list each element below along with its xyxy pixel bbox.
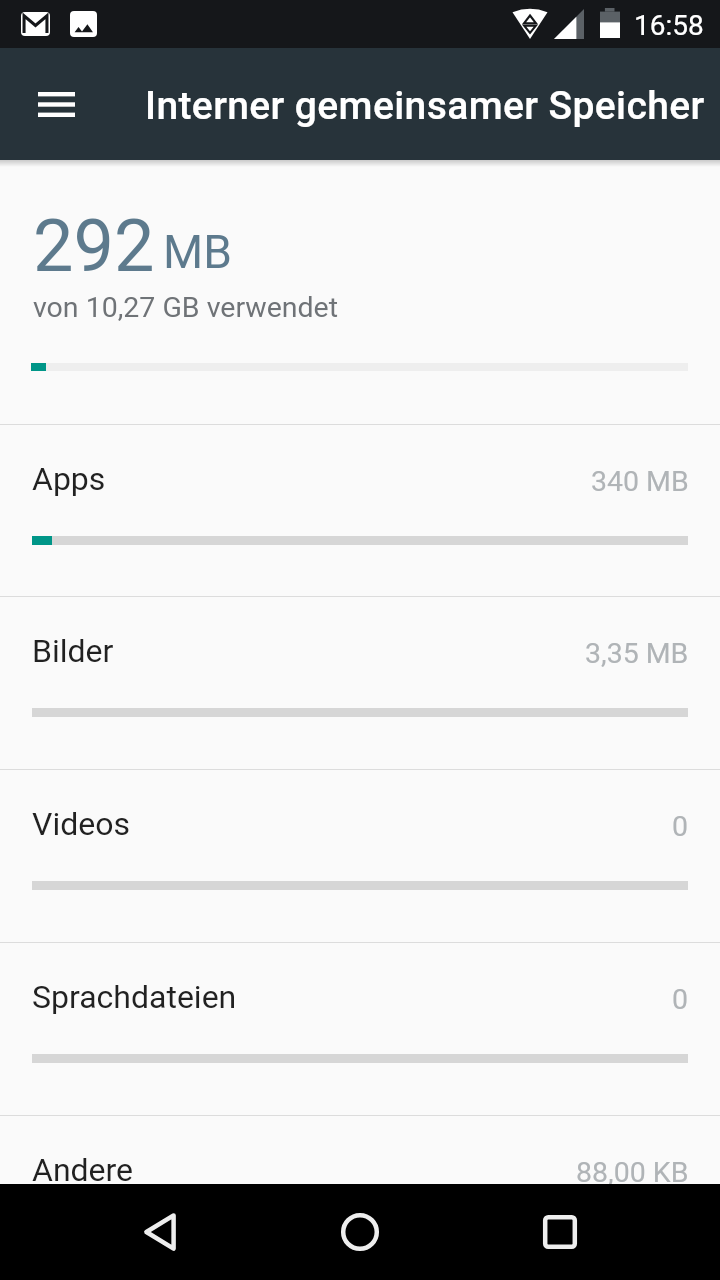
staticText: Sprachdateien [32,978,237,1016]
staticText: 0 [672,810,689,843]
button[interactable]: Home [312,1184,408,1280]
staticText: 88,00 KB [576,1156,689,1189]
button[interactable]: Back [112,1184,208,1280]
button[interactable]: Andere [0,1116,720,1280]
button[interactable]: Sprachdateien [0,943,720,1115]
staticText: MB [163,225,232,279]
staticText: 340 MB [591,465,689,498]
staticText: Interner gemeinsamer Speicher [145,83,705,129]
button[interactable]: Bilder [0,597,720,769]
staticText: 3,35 MB [585,637,689,670]
staticText: 16:58 [634,9,704,42]
button[interactable]: Apps [0,425,720,596]
staticText: Videos [32,805,130,843]
staticText: Andere [32,1151,134,1189]
button[interactable]: Videos [0,770,720,942]
staticText: 0 [672,983,689,1016]
staticText: von 10,27 GB verwendet [33,291,339,324]
staticText: Apps [32,460,106,498]
button[interactable]: Recent apps [512,1184,608,1280]
staticText: 292 [33,204,155,288]
staticText: Bilder [32,632,114,670]
button[interactable]: Menu [20,68,92,140]
